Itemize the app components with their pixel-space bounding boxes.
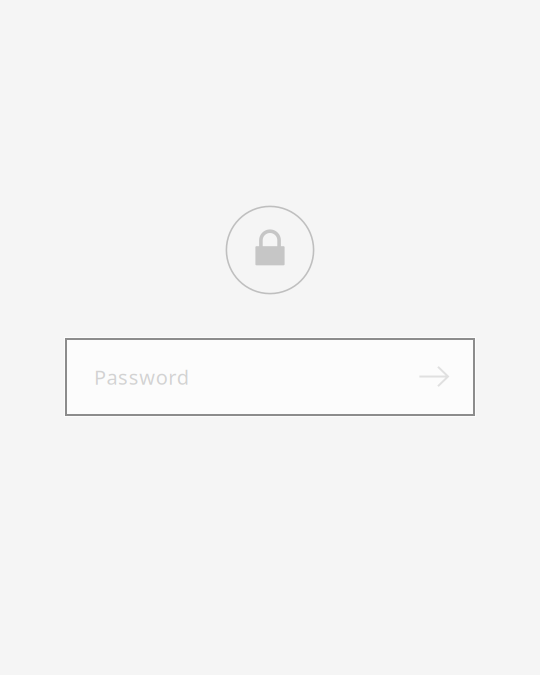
button[interactable]: Password	[64, 337, 476, 417]
staticText: Password	[94, 364, 189, 390]
button[interactable]: Submit password	[419, 367, 448, 387]
